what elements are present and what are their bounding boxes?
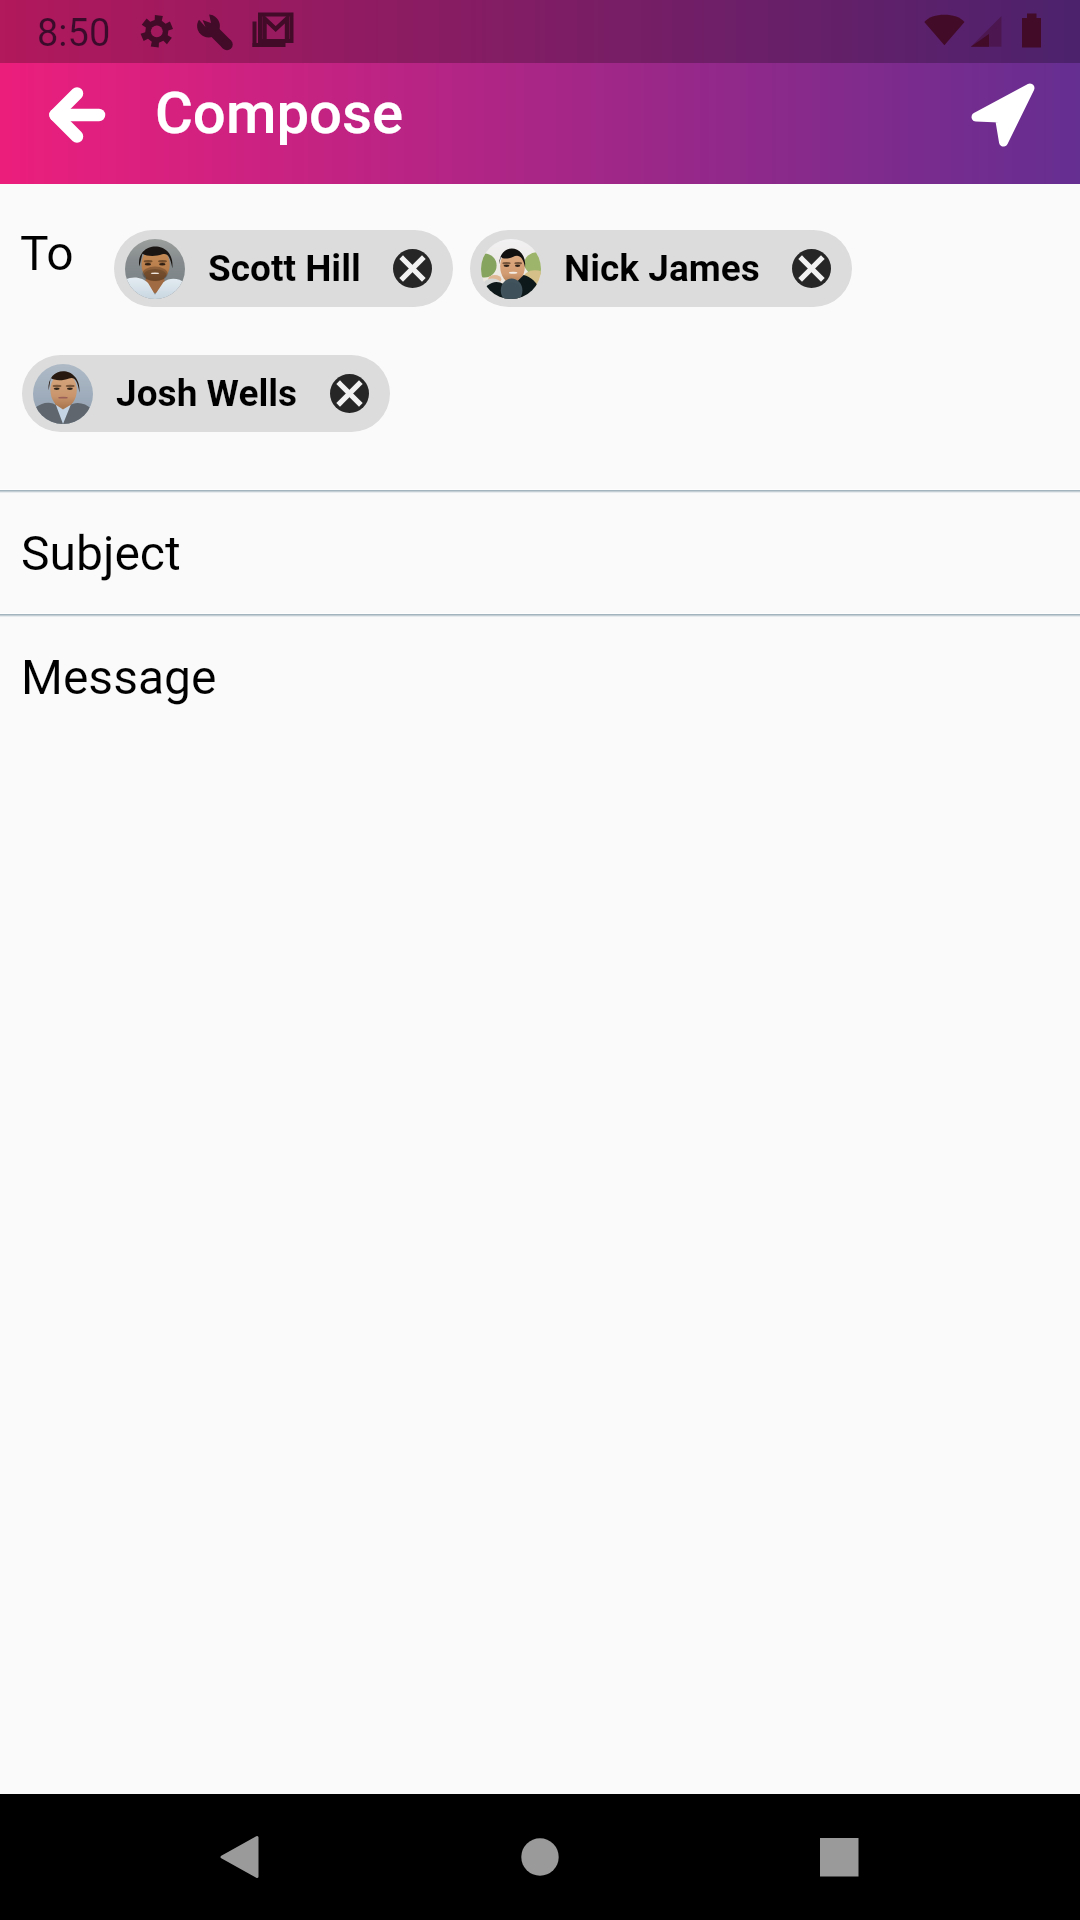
button[interactable]: Subject xyxy=(0,493,1080,613)
staticText: Compose xyxy=(155,79,404,147)
staticText: Josh Wells xyxy=(116,372,298,415)
button[interactable]: Scott Hill xyxy=(114,230,453,307)
button[interactable]: Remove Nick James xyxy=(792,249,831,288)
button[interactable]: Message xyxy=(0,617,1080,737)
button[interactable]: Remove Josh Wells xyxy=(330,374,369,413)
staticText: Subject xyxy=(21,525,181,581)
button[interactable]: Back xyxy=(17,63,137,183)
staticText: 8:50 xyxy=(37,11,111,56)
staticText: Nick James xyxy=(564,247,760,290)
button[interactable]: Remove Scott Hill xyxy=(393,249,432,288)
staticText: Scott Hill xyxy=(208,247,361,290)
staticText: Message xyxy=(21,649,217,705)
staticText: To xyxy=(20,225,74,281)
button[interactable]: Nick James xyxy=(470,230,852,307)
button[interactable]: Josh Wells xyxy=(22,355,390,432)
button[interactable]: Send xyxy=(941,63,1061,183)
